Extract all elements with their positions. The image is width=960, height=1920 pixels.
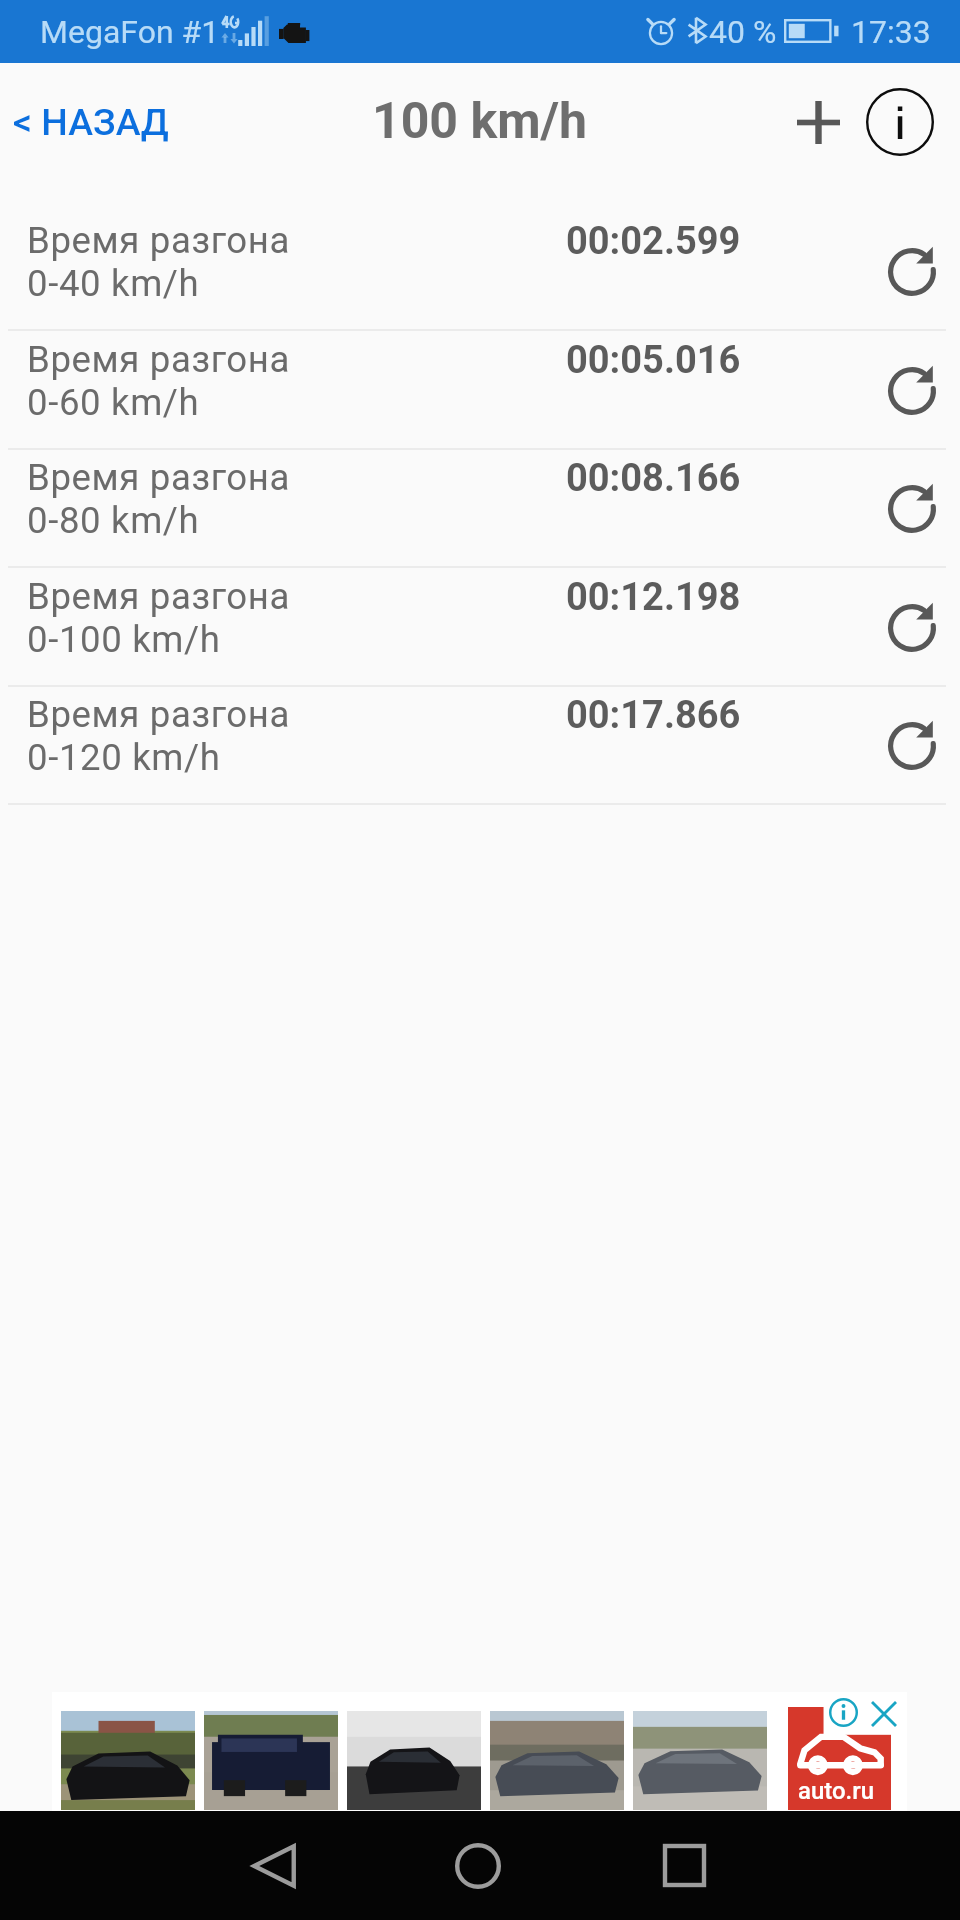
button[interactable]: Recents: [624, 1811, 744, 1920]
button[interactable]: Время разгона: [0, 449, 960, 568]
staticText: 00:12.198: [566, 575, 741, 620]
staticText: 0-60 km/h: [27, 381, 200, 424]
button[interactable]: Время разгона: [0, 686, 960, 805]
staticText: 0-80 km/h: [27, 499, 200, 542]
button[interactable]: Время разгона: [0, 568, 960, 687]
staticText: 100 km/h: [372, 92, 588, 151]
staticText: Время разгона: [27, 219, 291, 262]
button[interactable]: Refresh: [861, 568, 960, 687]
staticText: Время разгона: [27, 338, 291, 381]
button[interactable]: Время разгона: [0, 212, 960, 331]
staticText: 00:02.599: [566, 219, 741, 264]
staticText: < НАЗАД: [13, 100, 169, 144]
staticText: MegaFon #1: [40, 13, 220, 51]
staticText: 0-100 km/h: [27, 618, 221, 661]
staticText: 00:05.016: [566, 338, 741, 383]
staticText: Время разгона: [27, 575, 291, 618]
staticText: 0-120 km/h: [27, 736, 221, 779]
button[interactable]: Home: [418, 1811, 538, 1920]
button[interactable]: Refresh: [861, 212, 960, 331]
button[interactable]: Время разгона: [0, 331, 960, 450]
button[interactable]: Refresh: [861, 331, 960, 450]
staticText: 0-40 km/h: [27, 262, 200, 305]
staticText: Время разгона: [27, 693, 291, 736]
button[interactable]: Refresh: [861, 686, 960, 805]
button[interactable]: Back: [214, 1811, 334, 1920]
button[interactable]: Add: [777, 81, 859, 163]
button[interactable]: < НАЗАД: [0, 80, 195, 164]
button[interactable]: Advertisement: [52, 1692, 907, 1811]
staticText: 17:33: [851, 13, 931, 51]
staticText: auto.ru: [798, 1777, 875, 1805]
staticText: 00:17.866: [566, 693, 741, 738]
staticText: 00:08.166: [566, 456, 741, 501]
button[interactable]: Info: [857, 79, 943, 165]
staticText: 40 %: [709, 13, 777, 51]
staticText: Время разгона: [27, 456, 291, 499]
button[interactable]: Refresh: [861, 449, 960, 568]
